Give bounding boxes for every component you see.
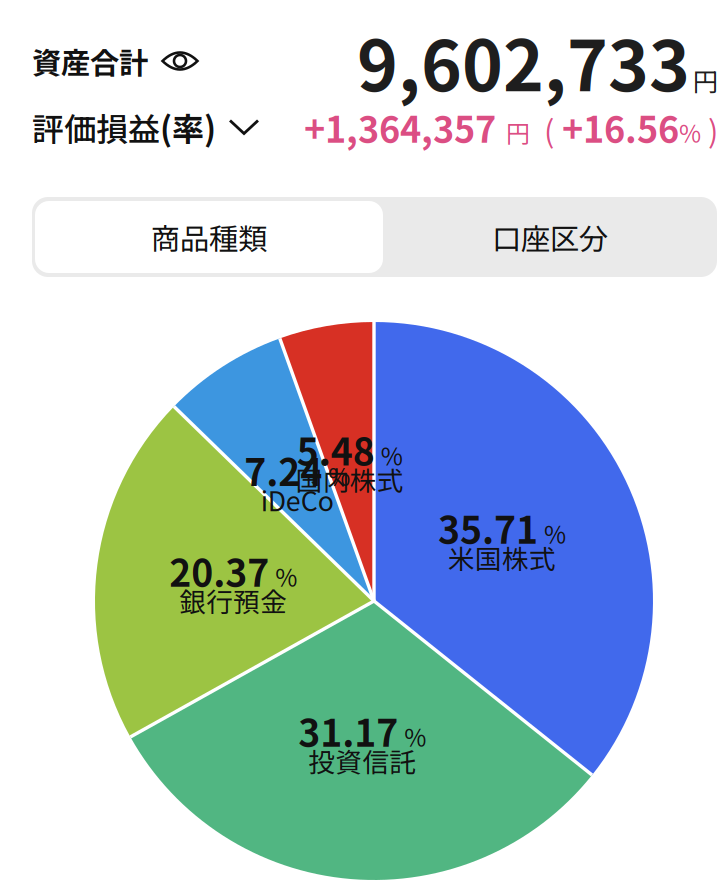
staticText: iDeCo: [261, 480, 334, 519]
staticText: 商品種類: [151, 216, 267, 258]
staticText: (率): [160, 104, 216, 150]
staticText: %: [328, 458, 350, 493]
button[interactable]: 商品種類: [32, 197, 383, 277]
staticText: 資産合計: [32, 40, 148, 82]
staticText: 7.24: [244, 443, 322, 497]
staticText: 銀行預金: [179, 581, 287, 620]
button[interactable]: 資産合計の表示を切り替え: [32, 30, 198, 92]
button[interactable]: 口座区分: [383, 197, 717, 277]
staticText: 評価損益: [32, 104, 160, 150]
staticText: 米国株式: [448, 538, 556, 577]
staticText: 円: [496, 115, 530, 150]
staticText: 円: [693, 62, 718, 98]
staticText: 投資信託: [308, 741, 416, 780]
staticText: %: [679, 115, 701, 150]
staticText: +16.56: [554, 101, 679, 153]
staticText: %: [404, 719, 426, 754]
staticText: %: [544, 516, 566, 551]
staticText: +1,364,357: [304, 101, 496, 153]
staticText: (: [530, 107, 554, 151]
staticText: 20.37: [169, 543, 269, 597]
staticText: 5.48: [297, 422, 375, 476]
staticText: 9,602,733: [357, 11, 690, 111]
staticText: %: [381, 437, 403, 472]
staticText: 31.17: [298, 703, 398, 758]
staticText: 口座区分: [492, 216, 608, 258]
staticText: 国内株式: [296, 460, 404, 498]
staticText: ): [701, 107, 718, 151]
staticText: 35.71: [438, 500, 538, 554]
staticText: %: [275, 559, 297, 594]
button[interactable]: 評価損益(率)の表示を切り替え: [32, 94, 258, 160]
